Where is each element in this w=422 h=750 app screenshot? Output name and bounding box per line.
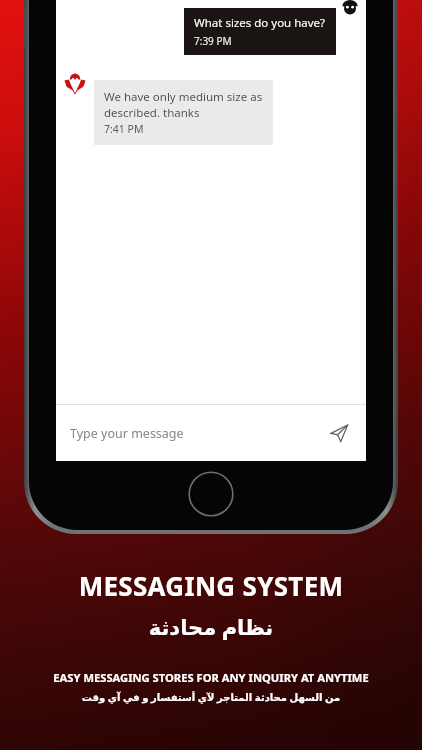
staticText: 7:39 PM [194,34,232,48]
staticText: نظام محادثة [14,613,408,642]
staticText: described. thanks [104,105,200,121]
staticText: 7:41 PM [104,122,144,136]
button[interactable]: Send [326,420,352,446]
staticText: EASY MESSAGING STORES FOR ANY INQUIRY AT… [14,670,408,685]
button[interactable]: Store avatar [64,73,86,95]
staticText: MESSAGING SYSTEM [14,568,408,603]
button[interactable]: Customer avatar [340,0,360,14]
button[interactable]: We have only medium size as [94,80,273,145]
staticText: Type your message [70,425,184,442]
button[interactable]: Home [188,471,234,517]
button[interactable]: Type your message [56,405,366,461]
staticText: من السهل محادثة المتاجر لآي أستفسار و في… [14,690,408,704]
button[interactable]: What sizes do you have? [184,8,336,55]
staticText: What sizes do you have? [194,15,326,31]
staticText: We have only medium size as [104,89,263,105]
